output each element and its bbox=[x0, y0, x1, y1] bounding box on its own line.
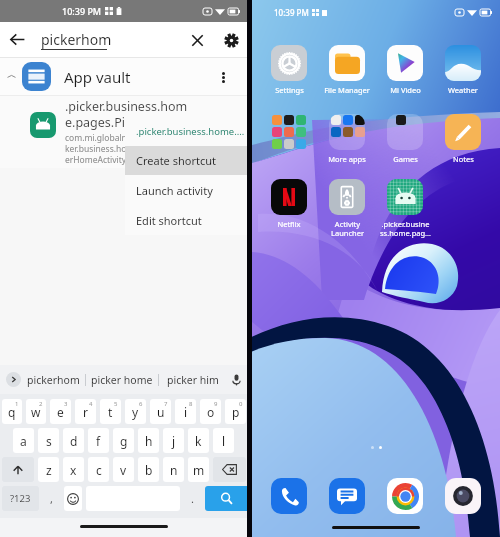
button[interactable]: l bbox=[213, 428, 234, 453]
staticText: .picker.business.home.pages.PickerHo bbox=[65, 98, 188, 130]
button[interactable]: Notes bbox=[437, 114, 489, 164]
button[interactable]: Mi Video bbox=[379, 45, 431, 95]
staticText: picker him bbox=[167, 373, 219, 387]
button[interactable]: c bbox=[88, 457, 109, 482]
button[interactable]: Launch activity bbox=[125, 175, 247, 205]
button[interactable]: m bbox=[188, 457, 209, 482]
button[interactable]: f bbox=[88, 428, 109, 453]
button[interactable]: picker home bbox=[86, 365, 158, 394]
button[interactable]: Folder bbox=[263, 114, 315, 154]
button[interactable]: h bbox=[138, 428, 159, 453]
staticText: ?123 bbox=[10, 492, 31, 505]
button[interactable]: r bbox=[75, 399, 96, 424]
staticText: .picker.busine ss.home.pag… bbox=[380, 219, 431, 238]
button[interactable]: Create shortcut bbox=[125, 146, 247, 175]
staticText: v bbox=[120, 462, 127, 478]
staticText: q bbox=[8, 404, 16, 420]
button[interactable]: Voice input bbox=[226, 370, 246, 390]
button[interactable]: Camera bbox=[445, 478, 481, 514]
button[interactable]: Netflix bbox=[263, 179, 315, 229]
button[interactable]: . bbox=[184, 486, 201, 511]
button[interactable]: Weather bbox=[437, 45, 489, 95]
button[interactable]: Chrome bbox=[387, 478, 423, 514]
button[interactable]: Edit shortcut bbox=[125, 205, 247, 235]
button[interactable]: More options bbox=[212, 66, 234, 88]
button[interactable]: Folder bbox=[437, 179, 489, 219]
staticText: j bbox=[172, 433, 176, 449]
button[interactable]: b bbox=[138, 457, 159, 482]
button[interactable]: Shift bbox=[2, 457, 34, 482]
staticText: File Manager bbox=[324, 85, 370, 95]
staticText: picker home bbox=[91, 373, 153, 387]
staticText: 10:39 PM bbox=[274, 7, 309, 18]
staticText: x bbox=[70, 462, 77, 478]
staticText: Launch activity bbox=[136, 183, 213, 198]
button[interactable]: Phone bbox=[271, 478, 307, 514]
button[interactable]: Activity Launcher bbox=[321, 179, 373, 238]
button[interactable]: g bbox=[113, 428, 134, 453]
button[interactable]: e bbox=[50, 399, 71, 424]
button[interactable]: Clear bbox=[180, 23, 214, 57]
staticText: 4 bbox=[89, 400, 93, 408]
staticText: r bbox=[83, 404, 88, 420]
button[interactable]: o bbox=[200, 399, 221, 424]
staticText: f bbox=[96, 433, 101, 449]
staticText: Mi Video bbox=[390, 85, 421, 95]
button[interactable]: Games bbox=[379, 114, 431, 164]
staticText: n bbox=[170, 462, 178, 478]
staticText: a bbox=[20, 433, 27, 449]
button[interactable]: u bbox=[150, 399, 171, 424]
staticText: pickerhom bbox=[41, 30, 112, 49]
button[interactable]: .picker.business.home.pages.PickerHo bbox=[0, 96, 248, 168]
button[interactable]: d bbox=[63, 428, 84, 453]
staticText: , bbox=[50, 491, 53, 506]
button[interactable]: Settings bbox=[214, 23, 248, 57]
button[interactable]: i bbox=[175, 399, 196, 424]
button[interactable]: Back bbox=[0, 22, 35, 57]
button[interactable]: k bbox=[188, 428, 209, 453]
staticText: .picker.business.home.p.. bbox=[136, 125, 247, 138]
staticText: g bbox=[120, 433, 128, 449]
button[interactable]: y bbox=[125, 399, 146, 424]
button[interactable]: , bbox=[43, 486, 60, 511]
button[interactable]: q bbox=[2, 399, 22, 424]
staticText: 1 bbox=[15, 400, 19, 408]
staticText: p bbox=[232, 404, 240, 420]
staticText: e bbox=[57, 404, 64, 420]
button[interactable]: Settings bbox=[263, 45, 315, 95]
button[interactable]: ?123 bbox=[2, 486, 39, 511]
staticText: 2 bbox=[39, 400, 43, 408]
button[interactable]: Search bbox=[205, 486, 248, 511]
button[interactable]: Messages bbox=[329, 478, 365, 514]
button[interactable]: p bbox=[225, 399, 246, 424]
button[interactable]: File Manager bbox=[321, 45, 373, 95]
button[interactable]: pickerhom bbox=[21, 365, 85, 394]
button[interactable]: .picker.busine ss.home.pag… bbox=[379, 179, 431, 238]
button[interactable]: w bbox=[26, 399, 46, 424]
button[interactable]: Expand suggestions bbox=[6, 372, 21, 387]
staticText: u bbox=[157, 404, 165, 420]
button[interactable]: z bbox=[38, 457, 59, 482]
staticText: com.mi.globalminusscreen.picker.business… bbox=[65, 132, 188, 165]
button[interactable]: x bbox=[63, 457, 84, 482]
staticText: More apps bbox=[328, 154, 366, 164]
staticText: h bbox=[145, 433, 153, 449]
staticText: c bbox=[96, 462, 102, 478]
staticText: 3 bbox=[64, 400, 68, 408]
staticText: App vault bbox=[64, 67, 131, 87]
staticText: 0 bbox=[239, 400, 243, 408]
button[interactable]: a bbox=[13, 428, 34, 453]
button[interactable]: More apps bbox=[321, 114, 373, 164]
button[interactable]: s bbox=[38, 428, 59, 453]
staticText: Settings bbox=[275, 85, 304, 95]
button[interactable]: v bbox=[113, 457, 134, 482]
button[interactable]: n bbox=[163, 457, 184, 482]
button[interactable]: picker him bbox=[159, 365, 226, 394]
button[interactable]: Backspace bbox=[213, 457, 246, 482]
button[interactable]: App vault bbox=[0, 58, 248, 95]
staticText: t bbox=[108, 404, 113, 420]
button[interactable]: Emoji bbox=[64, 486, 82, 511]
button[interactable]: j bbox=[163, 428, 184, 453]
button[interactable]: t bbox=[100, 399, 121, 424]
